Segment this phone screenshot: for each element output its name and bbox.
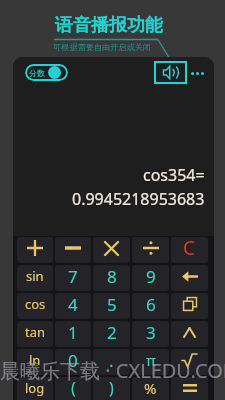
button[interactable]: Copy xyxy=(171,293,208,319)
button[interactable]: Multiply xyxy=(93,237,130,263)
button[interactable]: 4 xyxy=(55,293,91,319)
button[interactable]: 2 xyxy=(93,321,130,347)
staticText: 分数 xyxy=(29,68,45,78)
staticText: 7 xyxy=(68,265,78,288)
staticText: 0 xyxy=(68,349,78,372)
button[interactable]: sin xyxy=(17,265,53,291)
button[interactable]: 8 xyxy=(93,265,130,291)
staticText: 0.9945218953683 xyxy=(72,188,205,210)
button[interactable]: 3 xyxy=(132,321,169,347)
button[interactable]: More options xyxy=(188,63,206,83)
staticText: 语音播报功能 xyxy=(55,14,163,37)
staticText: cos xyxy=(25,295,46,313)
button[interactable]: 5 xyxy=(93,293,130,319)
staticText: π xyxy=(146,350,156,370)
button[interactable]: % xyxy=(132,377,169,400)
button[interactable]: . xyxy=(93,349,130,375)
staticText: ln xyxy=(29,351,41,369)
button[interactable]: 分数 xyxy=(25,64,68,81)
button[interactable]: Backspace xyxy=(171,265,208,291)
button[interactable]: log xyxy=(17,377,53,400)
button[interactable]: 1 xyxy=(55,321,91,347)
staticText: . xyxy=(109,349,114,372)
staticText: ( xyxy=(71,377,76,399)
button[interactable]: 9 xyxy=(132,265,169,291)
button[interactable]: ln xyxy=(17,349,53,375)
staticText: 4 xyxy=(68,293,78,316)
staticText: 晨曦乐下载 · CXLEDU.COM xyxy=(0,357,225,384)
button[interactable]: Equals xyxy=(171,377,208,400)
button[interactable]: 0 xyxy=(55,349,91,375)
staticText: 1 xyxy=(68,321,78,344)
staticText: sin xyxy=(26,267,44,285)
staticText: 可根据需要自由开启或关闭 xyxy=(53,42,152,52)
button[interactable]: cos xyxy=(17,293,53,319)
staticText: 3 xyxy=(146,321,156,344)
button[interactable]: Minus xyxy=(55,237,91,263)
button[interactable]: Voice broadcast xyxy=(154,61,187,84)
button[interactable]: Divide xyxy=(132,237,169,263)
staticText: ) xyxy=(109,377,114,399)
staticText: 2 xyxy=(107,321,117,344)
staticText: 8 xyxy=(107,265,117,288)
button[interactable]: ( xyxy=(55,377,91,400)
button[interactable]: Power xyxy=(171,321,208,347)
staticText: tan xyxy=(25,323,46,341)
staticText: 9 xyxy=(146,265,156,288)
button[interactable]: tan xyxy=(17,321,53,347)
button[interactable]: Plus xyxy=(17,237,53,263)
button[interactable]: Square root xyxy=(171,349,208,375)
button[interactable]: π xyxy=(132,349,169,375)
button[interactable]: 7 xyxy=(55,265,91,291)
staticText: log xyxy=(25,379,45,397)
staticText: cos354= xyxy=(143,164,205,186)
staticText: C xyxy=(183,237,196,261)
button[interactable]: C xyxy=(171,237,208,263)
staticText: 5 xyxy=(107,293,117,316)
button[interactable]: ) xyxy=(93,377,130,400)
button[interactable]: 6 xyxy=(132,293,169,319)
staticText: 6 xyxy=(146,293,156,316)
staticText: % xyxy=(144,378,157,398)
